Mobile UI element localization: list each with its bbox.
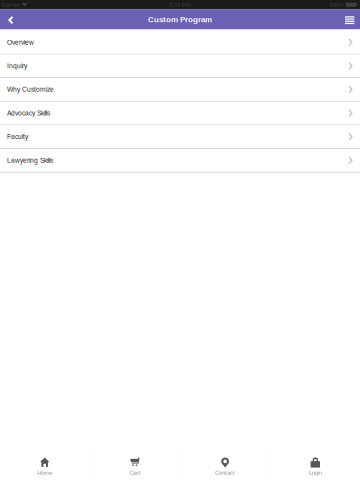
button[interactable]: Cart bbox=[90, 450, 180, 480]
staticText: Faculty bbox=[7, 133, 28, 140]
button[interactable]: Advocacy Skills bbox=[0, 102, 360, 125]
button[interactable]: Inquiry bbox=[0, 54, 360, 78]
staticText: Home bbox=[37, 469, 52, 476]
button[interactable]: Lawyering Skills bbox=[0, 149, 360, 172]
staticText: 3:33 PM bbox=[169, 1, 191, 8]
button[interactable]: Faculty bbox=[0, 125, 360, 149]
staticText: Contact bbox=[215, 469, 235, 476]
staticText: Login bbox=[309, 469, 322, 476]
button[interactable]: Overview bbox=[0, 31, 360, 54]
button[interactable]: Home bbox=[0, 450, 89, 480]
staticText: Overview bbox=[7, 39, 34, 46]
button[interactable]: Login bbox=[271, 450, 360, 480]
staticText: Carrier bbox=[2, 1, 19, 8]
button[interactable]: Why Customize bbox=[0, 78, 360, 102]
staticText: Lawyering Skills bbox=[7, 157, 53, 164]
button[interactable]: Back bbox=[0, 9, 22, 29]
staticText: Custom Program bbox=[148, 15, 212, 24]
button[interactable]: Contact bbox=[180, 450, 270, 480]
staticText: Advocacy Skills bbox=[7, 109, 50, 117]
staticText: Cart bbox=[129, 469, 140, 476]
staticText: Inquiry bbox=[7, 62, 27, 70]
button[interactable]: Menu bbox=[336, 9, 360, 29]
staticText: Why Customize bbox=[7, 86, 54, 93]
staticText: 100% bbox=[329, 1, 343, 8]
